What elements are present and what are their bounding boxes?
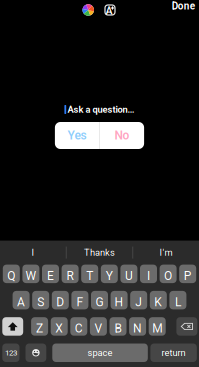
button[interactable]: N — [129, 317, 146, 336]
button[interactable]: P — [179, 265, 196, 283]
button[interactable]: L — [169, 291, 186, 309]
button[interactable]: I — [140, 265, 157, 283]
staticText: I'm — [160, 247, 173, 258]
staticText: C — [75, 321, 83, 335]
staticText: return — [162, 347, 186, 358]
button[interactable]: H — [111, 291, 128, 309]
staticText: F — [76, 295, 83, 309]
staticText: R — [67, 269, 74, 283]
button[interactable]: V — [90, 317, 107, 336]
staticText: N — [133, 321, 142, 335]
staticText: 123 — [5, 348, 17, 357]
button[interactable]: 123 — [2, 343, 19, 362]
button[interactable]: O — [160, 265, 177, 283]
staticText: I — [147, 269, 150, 283]
button[interactable]: E — [42, 265, 59, 283]
button[interactable]: M — [149, 317, 166, 336]
staticText: V — [94, 321, 102, 335]
button[interactable]: U — [120, 265, 137, 283]
button[interactable]: Emoji — [25, 343, 46, 362]
button[interactable]: Delete — [176, 317, 197, 336]
staticText: Y — [106, 269, 113, 283]
staticText: P — [184, 269, 192, 283]
staticText: H — [115, 295, 124, 309]
staticText: S — [37, 295, 44, 309]
button[interactable]: X — [51, 317, 68, 336]
button[interactable]: I'm — [133, 241, 199, 265]
button[interactable]: Shift — [2, 317, 23, 336]
button[interactable]: Z — [31, 317, 48, 336]
staticText: T — [86, 269, 93, 283]
button[interactable]: T — [81, 265, 98, 283]
button[interactable]: W — [22, 265, 39, 283]
button[interactable]: Y — [101, 265, 118, 283]
button[interactable]: G — [91, 291, 108, 309]
staticText: K — [154, 295, 162, 309]
button[interactable]: D — [52, 291, 69, 309]
staticText: O — [164, 269, 172, 283]
staticText: X — [55, 321, 63, 335]
button[interactable]: J — [130, 291, 147, 309]
button[interactable]: C — [70, 317, 87, 336]
button[interactable]: Thanks — [67, 241, 132, 265]
button[interactable]: B — [109, 317, 126, 336]
staticText: W — [25, 269, 36, 283]
button[interactable]: Text style — [103, 3, 116, 16]
button[interactable]: K — [150, 291, 167, 309]
staticText: Done — [172, 0, 195, 12]
button[interactable]: space — [52, 343, 148, 362]
staticText: Q — [7, 269, 15, 283]
staticText: U — [125, 269, 133, 283]
staticText: E — [47, 269, 54, 283]
button[interactable]: R — [62, 265, 79, 283]
staticText: D — [56, 295, 64, 309]
staticText: Thanks — [84, 247, 115, 258]
staticText: L — [175, 295, 181, 309]
button[interactable]: I — [0, 241, 66, 265]
staticText: Z — [36, 321, 43, 335]
button[interactable]: No — [100, 122, 144, 149]
button[interactable]: Done — [172, 3, 199, 15]
staticText: A — [106, 5, 113, 17]
button[interactable]: S — [32, 291, 49, 309]
staticText: G — [95, 295, 103, 309]
staticText: space — [87, 347, 112, 358]
button[interactable]: F — [71, 291, 88, 309]
staticText: Ask a question… — [68, 104, 135, 115]
button[interactable]: Color — [82, 4, 94, 16]
staticText: J — [135, 295, 142, 309]
staticText: A — [17, 295, 25, 309]
button[interactable]: Q — [3, 265, 20, 283]
button[interactable]: Yes — [55, 122, 99, 149]
staticText: B — [114, 321, 121, 335]
staticText: Yes — [67, 128, 86, 143]
staticText: No — [114, 128, 129, 143]
staticText: M — [152, 321, 162, 335]
button[interactable]: A — [13, 291, 30, 309]
button[interactable]: return — [150, 343, 197, 362]
staticText: I — [31, 247, 34, 258]
